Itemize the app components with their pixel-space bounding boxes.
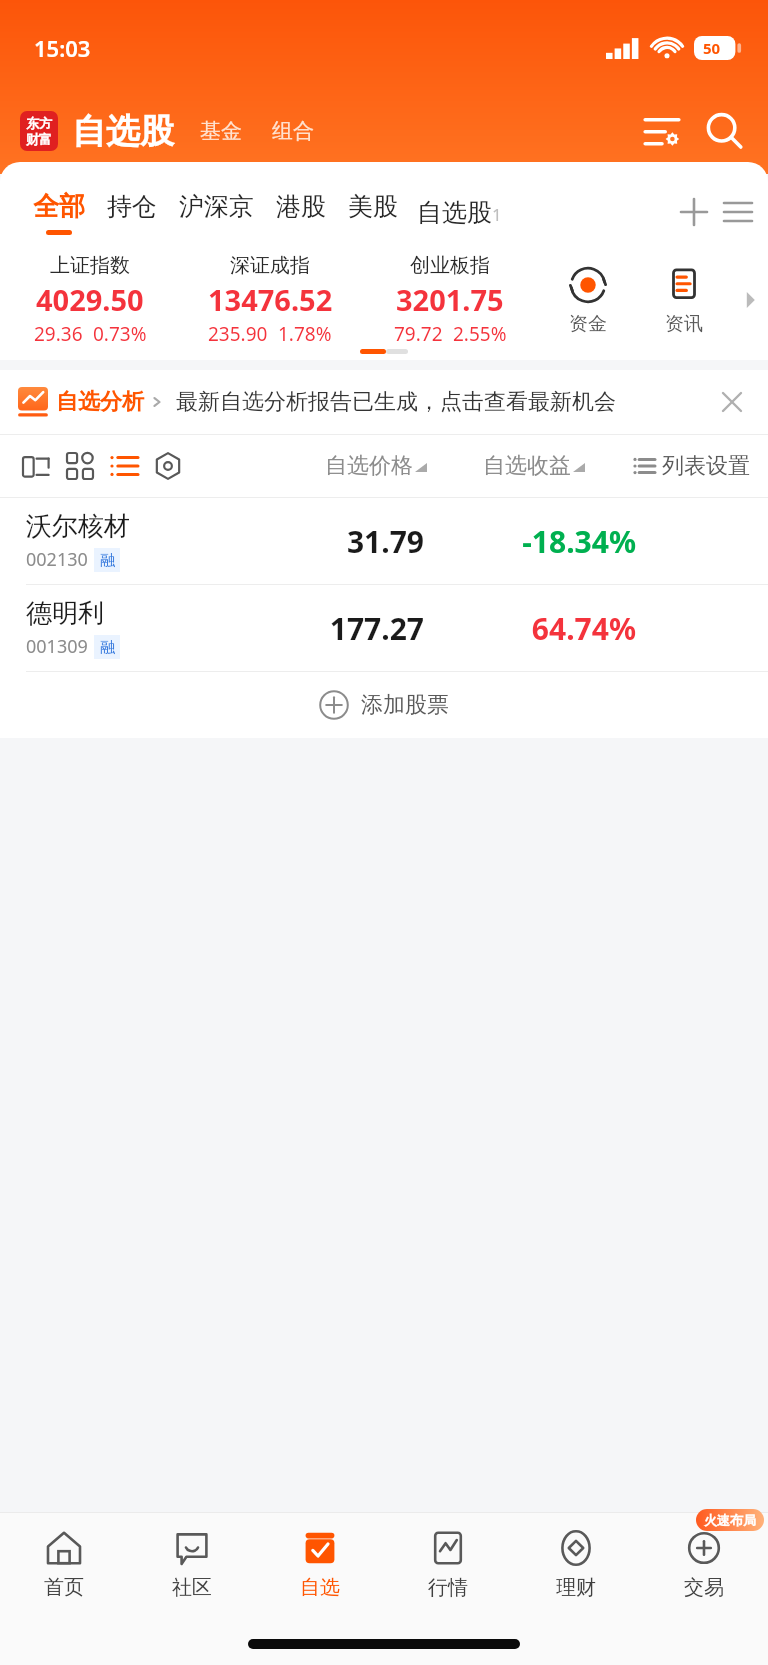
button[interactable]: 沃尔核材 [0, 498, 768, 584]
button[interactable]: List settings [638, 107, 686, 155]
button[interactable]: Grid view [58, 444, 102, 488]
staticText: 融 [100, 551, 115, 570]
staticText: 理财 [556, 1575, 596, 1600]
staticText: 001309 [26, 634, 88, 659]
staticText: 1.78% [278, 321, 332, 347]
staticText: 自选价格 [325, 452, 413, 480]
staticText: 177.27 [256, 608, 424, 649]
staticText: 美股 [348, 191, 398, 222]
staticText: 东方 [26, 115, 52, 131]
staticText: 交易 [684, 1575, 724, 1600]
button[interactable]: 持仓 [96, 191, 168, 234]
staticText: 首页 [44, 1575, 84, 1600]
staticText: 2.55% [453, 321, 507, 347]
staticText: 添加股票 [361, 691, 449, 719]
button[interactable]: 基金 [196, 112, 246, 150]
button[interactable]: 创业板指 [360, 253, 540, 347]
button[interactable]: 行情 [384, 1513, 512, 1613]
button[interactable]: 上证指数 [0, 253, 180, 347]
button[interactable]: 自选价格 [319, 452, 433, 480]
staticText: 13476.52 [208, 280, 333, 319]
staticText: 深证成指 [230, 253, 310, 278]
staticText: 31.79 [256, 521, 424, 562]
staticText: 15:03 [34, 33, 91, 63]
button[interactable]: 资讯 [636, 264, 732, 336]
button[interactable]: 资金 [540, 264, 636, 336]
button[interactable]: 美股 [337, 191, 409, 234]
staticText: 235.90 [208, 321, 268, 347]
staticText: 行情 [428, 1575, 468, 1600]
staticText: 港股 [276, 191, 326, 222]
button[interactable]: 组合 [268, 112, 318, 150]
button[interactable]: List view [102, 444, 146, 488]
staticText: 财富 [26, 131, 52, 147]
button[interactable]: 自选股 [409, 197, 510, 228]
staticText: 上证指数 [50, 253, 130, 278]
staticText: 德明利 [26, 597, 104, 630]
button[interactable]: Search [700, 107, 748, 155]
staticText: 3201.75 [396, 280, 504, 319]
button[interactable]: Close [712, 382, 752, 422]
button[interactable]: 自选收益 [477, 452, 591, 480]
button[interactable]: 首页 [0, 1513, 128, 1613]
staticText: 自选股 [417, 197, 492, 228]
staticText: 79.72 [394, 321, 443, 347]
staticText: 列表设置 [662, 452, 750, 480]
staticText: 基金 [200, 118, 242, 144]
staticText: -18.34% [446, 521, 636, 562]
button[interactable]: 社区 [128, 1513, 256, 1613]
staticText: 50 [703, 38, 721, 58]
staticText: 29.36 [34, 321, 83, 347]
button[interactable]: 自选 [256, 1513, 384, 1613]
button[interactable]: 港股 [265, 191, 337, 234]
button[interactable]: 列表设置 [629, 452, 754, 480]
button[interactable]: 深证成指 [180, 253, 360, 347]
button[interactable]: Focus [146, 444, 190, 488]
button[interactable]: 理财 [512, 1513, 640, 1613]
staticText: 自选 [300, 1575, 340, 1600]
button[interactable]: Split view [14, 444, 58, 488]
staticText: 1 [492, 203, 502, 226]
staticText: 最新自选分析报告已生成，点击查看最新机会 [176, 388, 616, 416]
staticText: 自选收益 [483, 452, 571, 480]
staticText: 全部 [33, 190, 85, 223]
button[interactable]: Add group [672, 190, 716, 234]
staticText: 组合 [272, 118, 314, 144]
staticText: 4029.50 [36, 280, 144, 319]
button[interactable]: Manage groups [716, 190, 760, 234]
staticText: 自选股 [72, 110, 174, 153]
staticText: 0.73% [93, 321, 147, 347]
staticText: 资讯 [665, 312, 703, 336]
button[interactable]: 沪深京 [168, 191, 265, 234]
staticText: 资金 [569, 312, 607, 336]
button[interactable]: 全部 [22, 190, 96, 235]
staticText: 64.74% [446, 608, 636, 649]
staticText: 002130 [26, 547, 88, 572]
staticText: 融 [100, 638, 115, 657]
button[interactable]: 自选分析 [18, 370, 752, 434]
button[interactable]: 德明利 [0, 585, 768, 671]
button[interactable]: 交易 [640, 1513, 768, 1613]
staticText: 社区 [172, 1575, 212, 1600]
staticText: 沃尔核材 [26, 510, 130, 543]
staticText: 火速布局 [704, 1512, 756, 1528]
staticText: 自选分析 [56, 388, 144, 416]
staticText: 沪深京 [179, 191, 254, 222]
staticText: 创业板指 [410, 253, 490, 278]
staticText: 持仓 [107, 191, 157, 222]
button[interactable]: 添加股票 [0, 672, 768, 738]
